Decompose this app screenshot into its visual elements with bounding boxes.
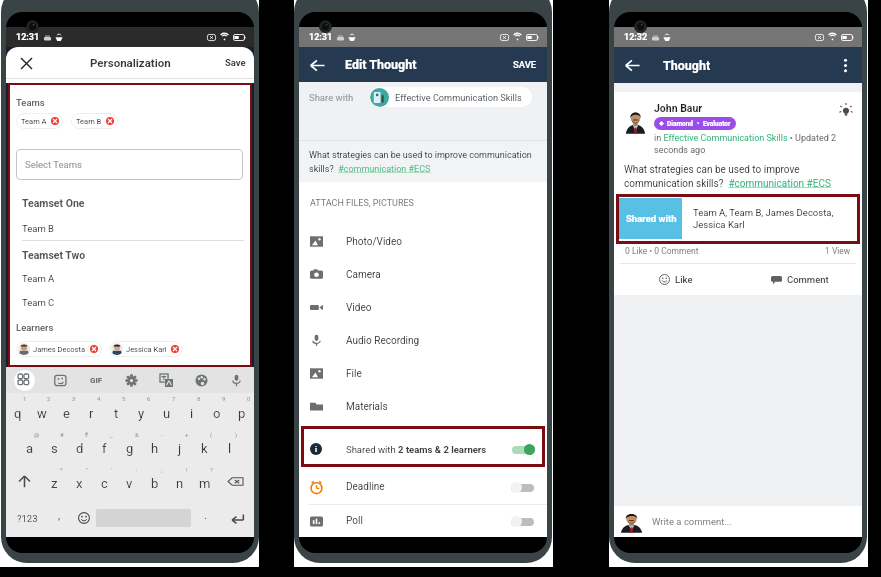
staticText: Thought (663, 58, 711, 73)
staticText: ! (186, 466, 188, 473)
button[interactable]: ? (192, 464, 217, 499)
button[interactable]: Emoji (71, 499, 96, 537)
button[interactable]: Camera (299, 258, 547, 291)
button[interactable]: File (299, 357, 547, 390)
button[interactable]: Close (15, 52, 37, 74)
staticText: w (37, 406, 47, 421)
staticText: Save (225, 57, 246, 68)
button[interactable]: Materials (299, 390, 547, 423)
button[interactable]: Jessica Karl (109, 341, 183, 357)
button[interactable]: - (142, 429, 167, 464)
button[interactable]: Video (299, 291, 547, 324)
staticText: h (151, 441, 159, 456)
staticText: Jessica Karl (126, 345, 167, 354)
button[interactable]: ! (167, 464, 192, 499)
button[interactable]: trans (149, 367, 184, 393)
button[interactable]: Comment (738, 264, 862, 295)
button[interactable]: Shift (6, 464, 42, 499)
button[interactable]: More options (836, 56, 854, 74)
button[interactable]: ; (142, 464, 167, 499)
button[interactable]: ( (192, 429, 217, 464)
button[interactable]: Deadline (299, 470, 547, 504)
staticText: 6 (147, 395, 151, 402)
button[interactable]: " (67, 464, 92, 499)
button[interactable]: gif (78, 367, 114, 393)
staticText: l (228, 441, 232, 456)
button[interactable]: grid (6, 367, 42, 393)
button[interactable]: Back (622, 55, 642, 75)
button[interactable]: 3 (54, 393, 79, 429)
button[interactable]: 5 (104, 393, 129, 429)
button[interactable]: 1 (6, 393, 30, 429)
button[interactable]: 9 (204, 393, 229, 429)
button[interactable]: * (42, 464, 67, 499)
staticText: in Effective Communication Skills • Upda… (654, 133, 838, 155)
staticText: Evaluator (703, 120, 731, 128)
button[interactable]: 4 (79, 393, 104, 429)
button[interactable]: ?123 (6, 499, 48, 537)
staticText: 4 (97, 395, 101, 402)
button[interactable]: Comma (48, 499, 71, 537)
button[interactable]: sticker (42, 367, 78, 393)
button[interactable]: Back (307, 55, 327, 75)
staticText: j (178, 441, 182, 456)
staticText: 12:31 (309, 32, 333, 43)
button[interactable]: mic (219, 367, 254, 393)
button[interactable]: : (117, 464, 142, 499)
staticText: Audio Recording (346, 335, 420, 347)
button[interactable]: palette (184, 367, 219, 393)
button[interactable]: 2 (30, 393, 54, 429)
staticText: Teamset One (22, 197, 85, 209)
button[interactable]: _ (92, 429, 117, 464)
staticText: Like (675, 274, 693, 285)
button[interactable]: SAVE (513, 59, 537, 70)
button[interactable]: Effective Communication Skills (370, 87, 532, 107)
staticText: u (163, 406, 171, 421)
button[interactable]: Like (614, 264, 738, 295)
staticText: Teams (16, 97, 45, 108)
staticText: James Decosta (33, 345, 86, 354)
button[interactable]: Save (225, 57, 246, 68)
staticText: t (114, 406, 119, 421)
button[interactable]: Team A (16, 113, 63, 129)
button[interactable]: ₹ (67, 429, 92, 464)
button[interactable]: James Decosta (16, 341, 102, 357)
staticText: - (161, 431, 163, 438)
button[interactable]: Enter (220, 499, 254, 537)
button[interactable]: Write a comment... (614, 506, 862, 537)
button[interactable]: # (42, 429, 67, 464)
staticText: Team A (22, 273, 55, 284)
button[interactable]: 0 (229, 393, 254, 429)
button[interactable]: Backspace (217, 464, 254, 499)
button[interactable]: Poll (299, 505, 547, 537)
button[interactable]: 7 (154, 393, 179, 429)
staticText: 8 (197, 395, 201, 402)
button[interactable]: Photo/Video (299, 225, 547, 258)
button[interactable]: 6 (129, 393, 154, 429)
staticText: Camera (346, 269, 381, 281)
staticText: Diamond (667, 120, 694, 128)
staticText: Materials (346, 401, 388, 413)
button[interactable]: @ (17, 429, 42, 464)
button[interactable]: 8 (179, 393, 204, 429)
staticText: Team A, Team B, James Decosta, Jessica K… (693, 207, 851, 230)
button[interactable]: ' (92, 464, 117, 499)
button[interactable]: gear (114, 367, 149, 393)
button[interactable]: Audio Recording (299, 324, 547, 357)
staticText: ) (235, 431, 238, 438)
button[interactable]: Select Teams (16, 149, 243, 180)
staticText: e (63, 406, 70, 421)
staticText: Photo/Video (346, 236, 402, 248)
button[interactable]: Period (191, 499, 220, 537)
staticText: Team B (76, 117, 102, 126)
button[interactable]: Team B (71, 113, 118, 129)
button[interactable]: Insight (838, 103, 854, 119)
button[interactable]: & (117, 429, 142, 464)
button[interactable]: i (299, 432, 547, 466)
staticText: k (201, 441, 208, 456)
staticText: SAVE (513, 59, 537, 70)
button[interactable]: ) (217, 429, 242, 464)
staticText: s (51, 441, 58, 456)
button[interactable]: + (167, 429, 192, 464)
